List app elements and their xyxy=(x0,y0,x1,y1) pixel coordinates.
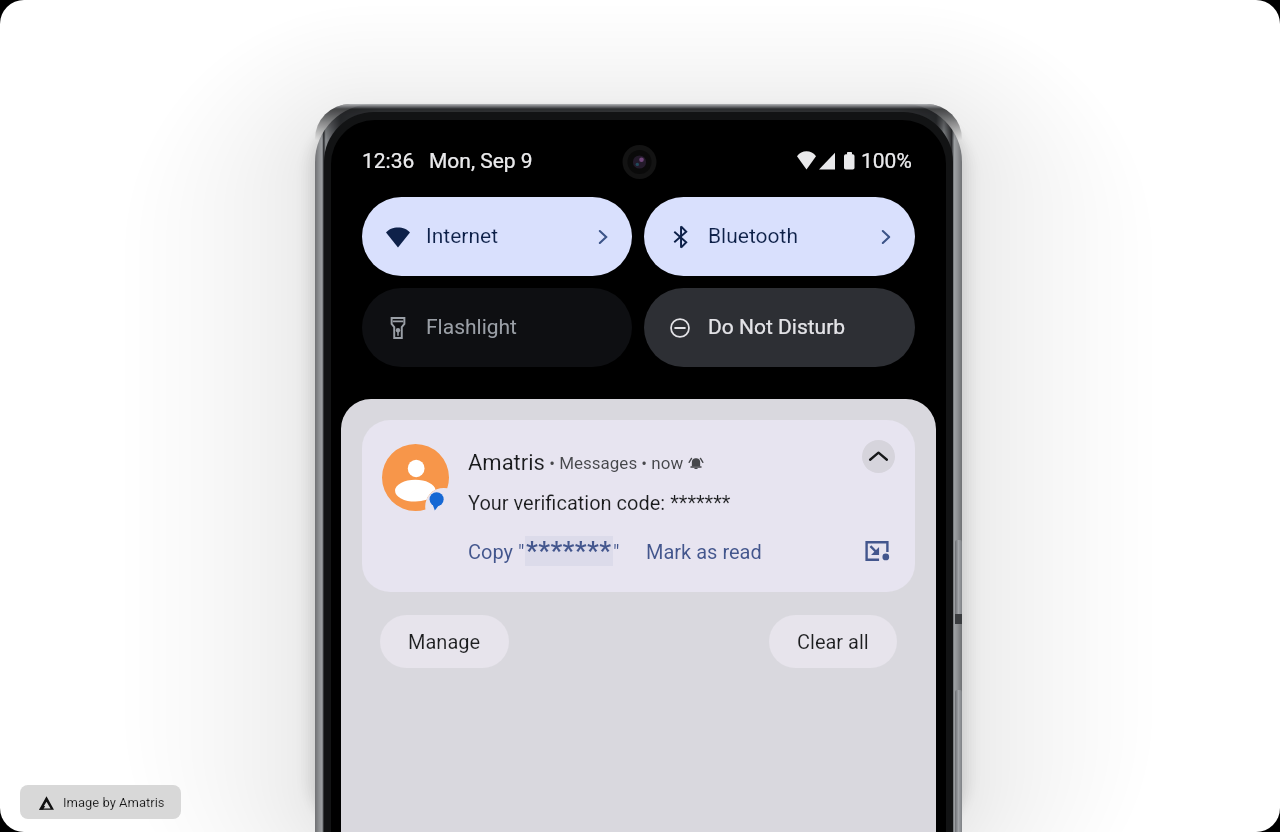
button[interactable]: Bluetooth xyxy=(644,197,915,276)
staticText: Copy " xyxy=(468,540,525,563)
staticText: 100% xyxy=(861,149,912,174)
staticText: Internet xyxy=(426,224,499,249)
staticText: Clear all xyxy=(797,630,869,653)
button[interactable]: Internet xyxy=(362,197,632,276)
button[interactable]: Amatris xyxy=(362,420,915,592)
staticText: Flashlight xyxy=(426,315,517,340)
button[interactable]: Copy " xyxy=(468,536,620,566)
button[interactable]: Manage xyxy=(380,615,509,668)
staticText: " xyxy=(613,540,620,563)
staticText: Mark as read xyxy=(646,540,762,563)
staticText: Mon, Sep 9 xyxy=(429,149,533,174)
button[interactable]: Flashlight xyxy=(362,288,632,367)
staticText: Do Not Disturb xyxy=(708,315,846,340)
staticText: ******* xyxy=(526,536,612,566)
staticText: Image by Amatris xyxy=(63,795,165,810)
button[interactable]: Do Not Disturb xyxy=(644,288,915,367)
button[interactable]: Collapse notification xyxy=(862,440,895,473)
button[interactable]: Image by Amatris xyxy=(20,785,181,819)
staticText: • Messages • now xyxy=(545,453,688,473)
staticText: Your verification code: ******* xyxy=(468,491,731,514)
staticText: 12:36 xyxy=(362,149,415,174)
button[interactable]: Open as bubble xyxy=(861,535,893,567)
staticText: Amatris xyxy=(468,450,545,476)
button[interactable]: Clear all xyxy=(769,615,897,668)
button[interactable]: Mark as read xyxy=(646,540,762,563)
staticText: Bluetooth xyxy=(708,224,798,249)
staticText: Manage xyxy=(408,630,481,653)
